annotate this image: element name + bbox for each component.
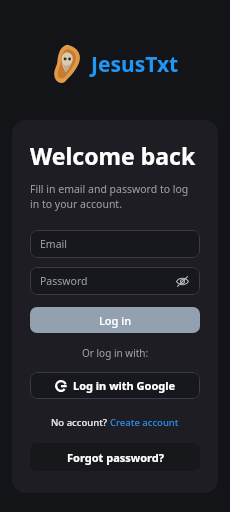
staticText: Log in	[99, 313, 132, 328]
button[interactable]: Create account	[110, 416, 179, 429]
button[interactable]: Log in	[30, 307, 200, 333]
button[interactable]: Forgot password?	[30, 443, 200, 471]
staticText: JesusTxt	[91, 50, 179, 79]
staticText: Email	[40, 237, 190, 251]
button[interactable]: Password	[30, 267, 200, 295]
staticText: Welcome back	[30, 140, 196, 171]
staticText: Create account	[110, 416, 179, 429]
button[interactable]: Show password	[174, 273, 190, 289]
staticText: Or log in with:	[82, 346, 149, 360]
button[interactable]: Email	[30, 230, 200, 258]
button[interactable]: Log in with Google	[30, 372, 200, 399]
staticText: Log in with Google	[73, 378, 176, 393]
staticText: No account?	[51, 416, 110, 429]
staticText: Password	[40, 274, 174, 288]
staticText: Forgot password?	[67, 450, 164, 465]
staticText: Fill in email and password to log in to …	[30, 182, 200, 211]
